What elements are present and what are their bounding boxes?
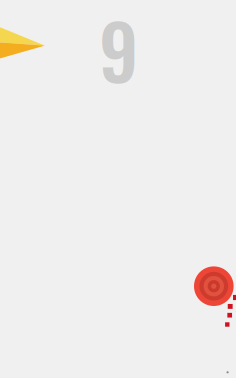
staticText: 9 bbox=[99, 0, 138, 105]
button[interactable]: Play field bbox=[0, 0, 236, 378]
